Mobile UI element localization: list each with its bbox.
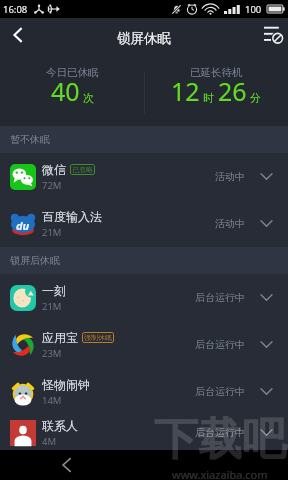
staticText: 分 bbox=[250, 91, 261, 105]
staticText: 次 bbox=[83, 91, 94, 105]
staticText: 时 bbox=[203, 91, 214, 105]
button[interactable]: du bbox=[0, 200, 288, 247]
staticText: 暂不休眠 bbox=[10, 133, 50, 146]
staticText: 100 bbox=[245, 3, 262, 16]
staticText: 今日已休眠 bbox=[46, 66, 99, 79]
staticText: 21M bbox=[42, 300, 62, 313]
button[interactable]: Back bbox=[0, 18, 34, 58]
staticText: 微信 bbox=[42, 162, 66, 177]
staticText: 活动中 bbox=[215, 170, 245, 183]
staticText: 一刻 bbox=[42, 283, 66, 298]
staticText: 应用宝 bbox=[42, 330, 78, 345]
staticText: 40 bbox=[51, 74, 80, 108]
staticText: 21M bbox=[42, 226, 62, 239]
staticText: 下载吧 bbox=[154, 412, 286, 467]
button[interactable]: 应用宝 bbox=[0, 321, 288, 368]
staticText: 怪物闹钟 bbox=[42, 377, 90, 392]
button[interactable]: 联系人 bbox=[0, 415, 288, 450]
staticText: 活动中 bbox=[215, 217, 245, 230]
staticText: 23M bbox=[42, 347, 62, 360]
staticText: 后台运行中 bbox=[195, 338, 245, 351]
button[interactable]: 怪物闹钟 bbox=[0, 368, 288, 415]
staticText: 72M bbox=[42, 179, 62, 192]
staticText: www.xiazaiba.com bbox=[172, 467, 268, 480]
button[interactable]: 微信 bbox=[0, 153, 288, 200]
button[interactable]: Filter list bbox=[256, 18, 288, 58]
staticText: 锁屏休眠 bbox=[117, 30, 171, 47]
staticText: 16:08 bbox=[3, 3, 28, 16]
button[interactable]: Back bbox=[54, 453, 78, 477]
staticText: 后台运行中 bbox=[195, 426, 245, 439]
button[interactable]: 一刻 bbox=[0, 274, 288, 321]
staticText: 强制休眠 bbox=[84, 333, 112, 342]
staticText: 联系人 bbox=[42, 418, 78, 433]
staticText: 14M bbox=[42, 394, 62, 407]
staticText: 后台运行中 bbox=[195, 291, 245, 304]
staticText: 已忽略 bbox=[72, 165, 93, 174]
staticText: 12 bbox=[171, 74, 200, 108]
staticText: 后台运行中 bbox=[195, 385, 245, 398]
staticText: du bbox=[16, 218, 30, 233]
staticText: 百度输入法 bbox=[42, 209, 102, 224]
staticText: 已延长待机 bbox=[190, 66, 243, 79]
staticText: 26 bbox=[218, 74, 247, 108]
staticText: 4M bbox=[42, 435, 57, 448]
staticText: 锁屏后休眠 bbox=[10, 254, 60, 267]
